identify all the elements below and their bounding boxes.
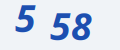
staticText: 5 [15, 0, 36, 43]
staticText: 58 [50, 1, 92, 50]
